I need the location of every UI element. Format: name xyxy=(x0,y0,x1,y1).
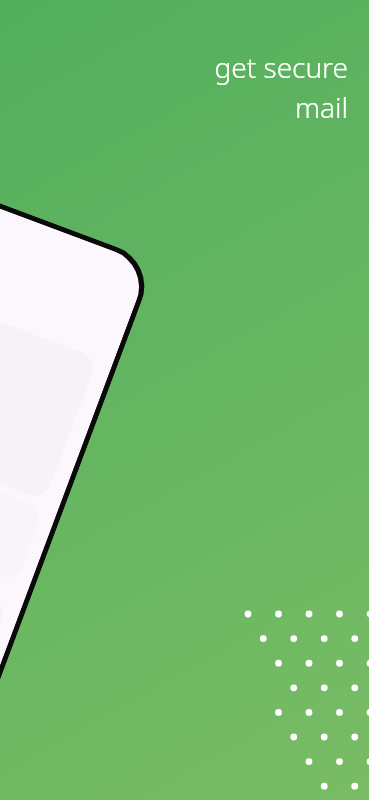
button[interactable]: Messages xyxy=(0,417,44,582)
staticText: get secure mail xyxy=(133,48,348,127)
button[interactable]: Email address card xyxy=(0,268,98,501)
